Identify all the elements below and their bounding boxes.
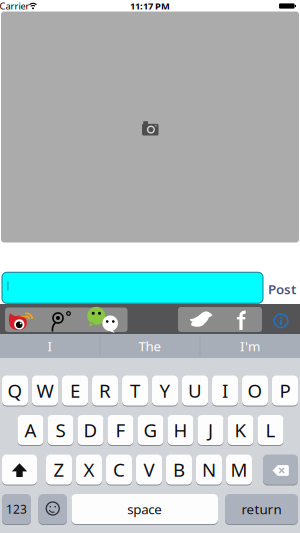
button[interactable]: G — [137, 414, 163, 445]
button[interactable]: Twitter — [178, 307, 220, 332]
button[interactable]: T — [122, 375, 148, 406]
staticText: Post — [268, 280, 296, 298]
staticText: Y — [159, 378, 170, 403]
button[interactable]: R — [92, 375, 118, 406]
staticText: L — [265, 418, 275, 442]
staticText: R — [99, 378, 111, 403]
staticText: I — [222, 378, 228, 403]
staticText: C — [113, 457, 125, 482]
staticText: P — [279, 378, 290, 403]
button[interactable]: The — [101, 334, 199, 358]
button[interactable]: H — [167, 414, 193, 445]
button[interactable]: WeChat — [87, 307, 127, 332]
staticText: I — [47, 337, 52, 355]
button[interactable]: P — [272, 375, 298, 406]
staticText: space — [127, 500, 162, 518]
button[interactable]: Sina Weibo — [5, 307, 46, 332]
button[interactable]: Shift — [2, 454, 37, 485]
button[interactable]: I — [212, 375, 238, 406]
staticText: H — [173, 418, 187, 442]
staticText: X — [83, 457, 94, 482]
staticText: Q — [7, 378, 22, 403]
staticText: B — [173, 457, 185, 482]
button[interactable]: Emoji — [38, 493, 67, 524]
button[interactable]: 123 — [2, 493, 31, 524]
staticText: 11:17 PM — [130, 0, 170, 12]
button[interactable]: Tencent Weibo — [46, 307, 87, 332]
button[interactable]: C — [106, 454, 132, 485]
staticText: Z — [53, 457, 64, 482]
button[interactable]: I — [1, 334, 99, 358]
staticText: J — [208, 418, 213, 442]
button[interactable]: U — [182, 375, 208, 406]
staticText: V — [143, 457, 154, 482]
staticText: K — [234, 418, 246, 442]
button[interactable]: Y — [152, 375, 178, 406]
button[interactable]: M — [226, 454, 252, 485]
staticText: return — [241, 500, 281, 518]
button[interactable]: D — [77, 414, 103, 445]
button[interactable]: W — [32, 375, 58, 406]
button[interactable]: V — [136, 454, 162, 485]
button[interactable]: return — [225, 493, 298, 524]
button[interactable]: I'm — [201, 334, 299, 358]
button[interactable]: Z — [46, 454, 72, 485]
staticText: E — [70, 378, 80, 403]
button[interactable]: F — [107, 414, 133, 445]
button[interactable]: N — [196, 454, 222, 485]
button[interactable]: E — [62, 375, 88, 406]
staticText: 123 — [6, 501, 27, 517]
button[interactable]: O — [242, 375, 268, 406]
button[interactable]: J — [197, 414, 223, 445]
staticText: The — [138, 337, 161, 355]
button[interactable]: K — [227, 414, 253, 445]
button[interactable]: L — [257, 414, 283, 445]
button[interactable]: B — [166, 454, 192, 485]
staticText: Carrier — [0, 0, 29, 12]
staticText: W — [36, 378, 53, 403]
button[interactable]: Post — [265, 279, 299, 299]
button[interactable]: Facebook — [220, 307, 262, 332]
button[interactable]: space — [71, 493, 218, 524]
staticText: U — [188, 378, 202, 403]
button[interactable]: S — [47, 414, 73, 445]
staticText: A — [24, 418, 36, 442]
staticText: I'm — [240, 337, 260, 355]
staticText: N — [202, 457, 216, 482]
button[interactable]: A — [17, 414, 43, 445]
staticText: O — [247, 378, 262, 403]
staticText: G — [143, 418, 157, 442]
staticText: M — [230, 457, 247, 482]
button[interactable]: Delete — [263, 454, 298, 485]
staticText: S — [55, 418, 65, 442]
button[interactable]: Q — [2, 375, 28, 406]
button[interactable]: Info — [265, 306, 297, 334]
staticText: F — [115, 418, 125, 442]
button[interactable]: Message — [2, 272, 263, 303]
staticText: T — [130, 378, 140, 403]
staticText: D — [83, 418, 97, 442]
button[interactable]: X — [76, 454, 102, 485]
